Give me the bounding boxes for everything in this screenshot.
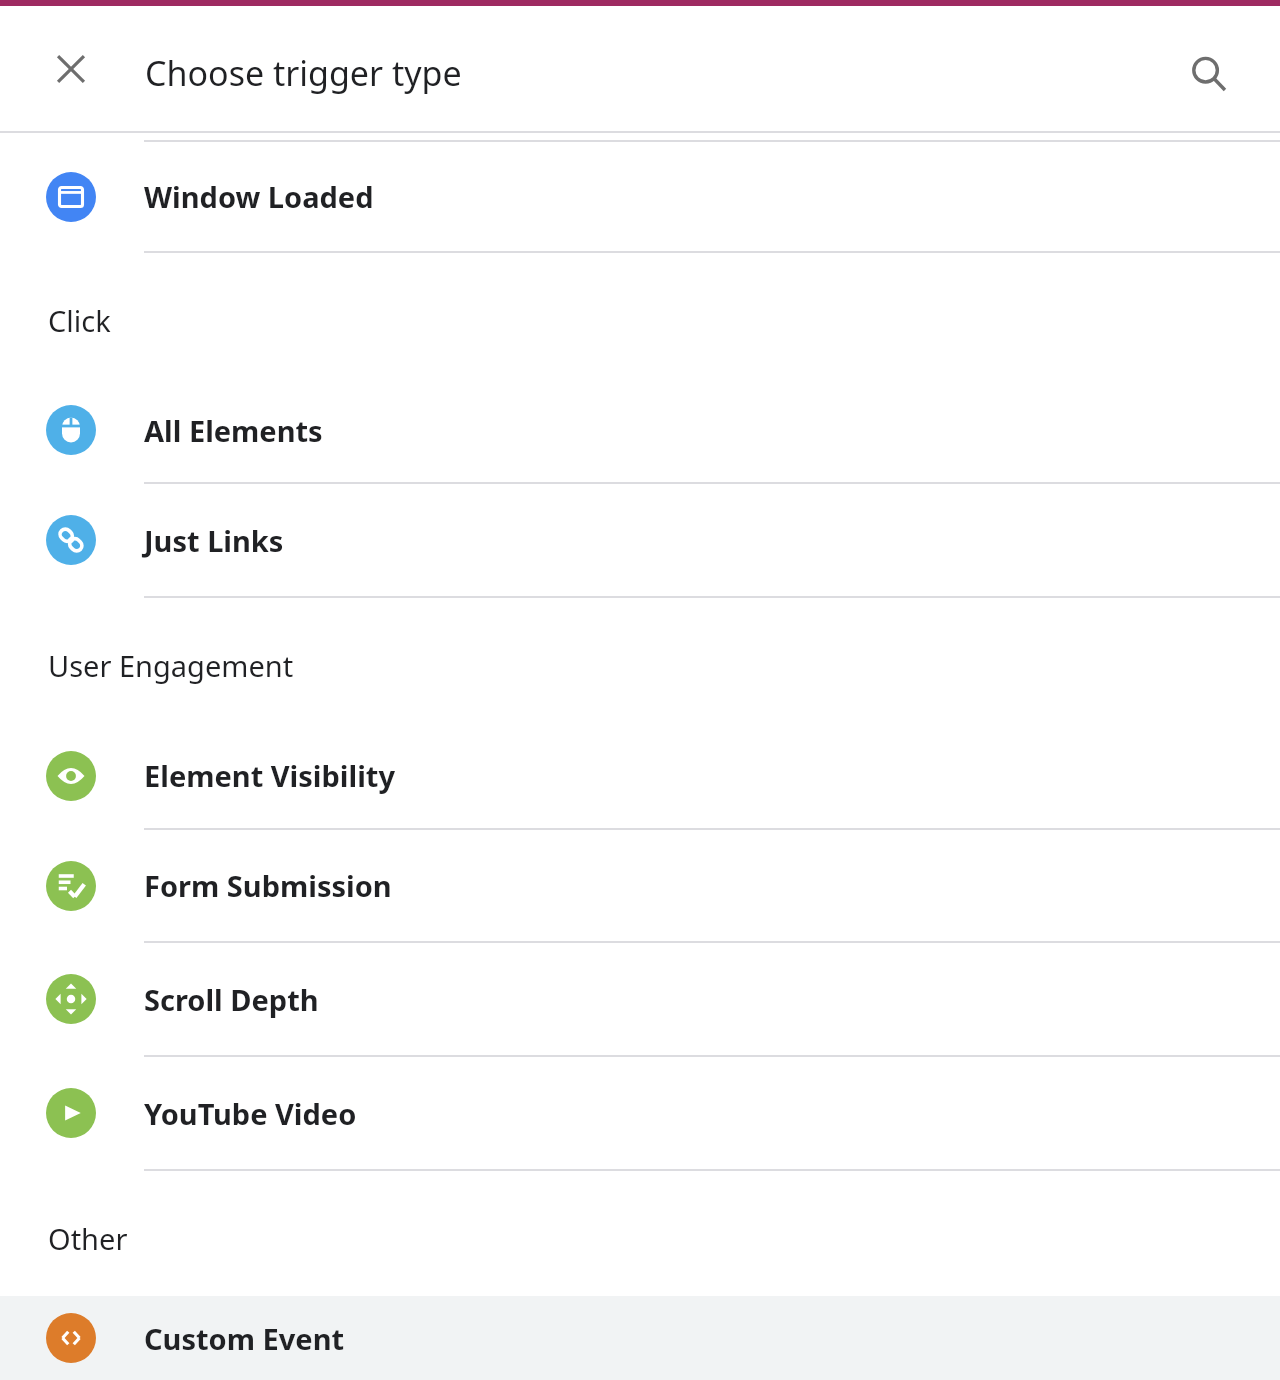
staticText: Form Submission — [144, 866, 392, 905]
button[interactable]: Element Visibility — [0, 723, 1280, 828]
button[interactable]: Form Submission — [0, 830, 1280, 941]
staticText: All Elements — [144, 411, 323, 450]
button[interactable]: Just Links — [0, 484, 1280, 596]
button[interactable]: Window Loaded — [0, 142, 1280, 251]
button[interactable]: Search — [1178, 43, 1240, 105]
staticText: User Engagement — [48, 646, 294, 685]
staticText: Other — [48, 1219, 128, 1258]
staticText: Window Loaded — [144, 177, 374, 216]
staticText: Scroll Depth — [144, 980, 319, 1019]
button[interactable]: Close — [40, 38, 102, 100]
button[interactable]: Custom Event — [0, 1296, 1280, 1380]
button[interactable]: Scroll Depth — [0, 943, 1280, 1055]
staticText: Just Links — [144, 521, 284, 560]
staticText: Custom Event — [144, 1319, 345, 1358]
staticText: Choose trigger type — [145, 50, 462, 96]
staticText: Element Visibility — [144, 756, 395, 795]
staticText: YouTube Video — [144, 1094, 357, 1133]
button[interactable]: All Elements — [0, 378, 1280, 482]
button[interactable]: YouTube Video — [0, 1057, 1280, 1169]
staticText: Click — [48, 301, 111, 340]
